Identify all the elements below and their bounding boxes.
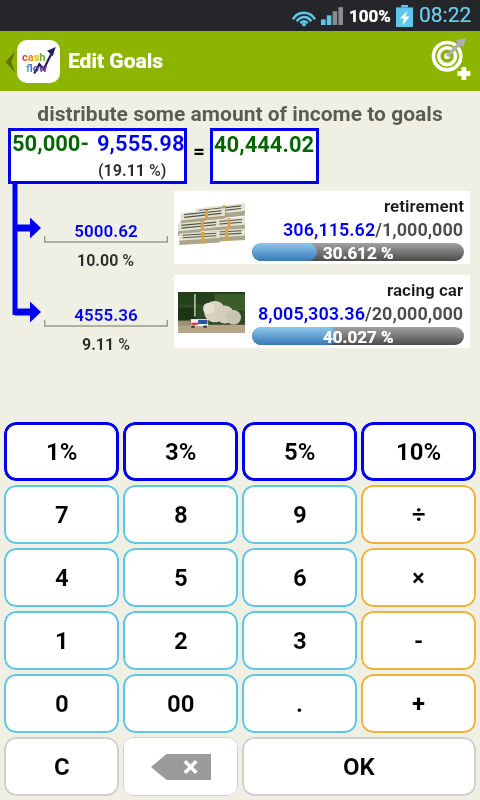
button[interactable]: 6 <box>242 548 357 607</box>
button[interactable]: 8 <box>123 485 238 544</box>
staticText: 30.612 % <box>323 243 394 261</box>
staticText: 8 <box>174 501 188 529</box>
button[interactable]: 5 <box>123 548 238 607</box>
staticText: 3 <box>293 627 307 655</box>
staticText: 40.027 % <box>323 327 394 345</box>
button[interactable]: racing car <box>174 275 470 348</box>
button[interactable]: 1% <box>4 422 119 481</box>
button[interactable]: Back <box>0 40 61 83</box>
staticText: OK <box>343 753 375 781</box>
staticText: 306,115.62/1,000,000 <box>283 219 464 240</box>
staticText: racing car <box>387 280 464 300</box>
staticText: 00 <box>167 690 195 718</box>
staticText: 100% <box>349 6 391 26</box>
button[interactable]: 0 <box>4 674 119 733</box>
staticText: 9.11 % <box>82 335 130 354</box>
staticText: = <box>193 139 206 164</box>
staticText: 1 <box>55 627 69 655</box>
button[interactable]: 4 <box>4 548 119 607</box>
staticText: 4 <box>55 564 69 592</box>
other: Back <box>5 51 15 73</box>
button[interactable]: 5000.62 <box>44 221 168 270</box>
button[interactable]: OK <box>242 737 476 796</box>
staticText: 40,444.02 <box>214 132 315 158</box>
button[interactable]: + <box>361 674 476 733</box>
button[interactable]: 7 <box>4 485 119 544</box>
button[interactable]: 1 <box>4 611 119 670</box>
staticText: + <box>412 690 426 718</box>
staticText: 10.00 % <box>77 251 135 270</box>
button[interactable]: 5% <box>242 422 357 481</box>
staticText: 2 <box>174 627 188 655</box>
staticText: 9,555.98 <box>97 131 185 157</box>
staticText: - <box>414 627 424 655</box>
button[interactable]: 10% <box>361 422 476 481</box>
staticText: 50,000- <box>12 131 90 157</box>
staticText: C <box>54 753 70 781</box>
staticText: 9 <box>293 501 307 529</box>
button[interactable]: 00 <box>123 674 238 733</box>
staticText: 3% <box>165 438 197 466</box>
button[interactable]: 3% <box>123 422 238 481</box>
staticText: 8,005,303.36/20,000,000 <box>258 303 464 324</box>
staticText: 0 <box>55 690 69 718</box>
staticText: ÷ <box>412 501 426 529</box>
button[interactable]: 2 <box>123 611 238 670</box>
staticText: cash <box>22 51 46 64</box>
staticText: Edit Goals <box>68 49 164 74</box>
button[interactable]: retirement <box>174 191 470 264</box>
button[interactable]: C <box>4 737 119 796</box>
button[interactable]: 40,444.02 <box>210 128 319 184</box>
staticText: 5 <box>174 564 188 592</box>
staticText: 6 <box>293 564 307 592</box>
button[interactable]: 3 <box>242 611 357 670</box>
staticText: retirement <box>384 196 464 216</box>
button[interactable]: 9 <box>242 485 357 544</box>
button[interactable]: ÷ <box>361 485 476 544</box>
button[interactable]: 50,000- <box>8 128 187 184</box>
staticText: 5% <box>284 438 316 466</box>
staticText: 1% <box>46 438 78 466</box>
staticText: 4555.36 <box>44 305 168 325</box>
button[interactable]: 4555.36 <box>44 305 168 354</box>
staticText: . <box>296 690 303 718</box>
staticText: flow <box>26 62 48 75</box>
staticText: 5000.62 <box>44 221 168 241</box>
staticText: 7 <box>55 501 69 529</box>
button[interactable]: × <box>361 548 476 607</box>
staticText: distribute some amount of income to goal… <box>0 102 480 127</box>
staticText: 10% <box>396 438 442 466</box>
button[interactable]: - <box>361 611 476 670</box>
button[interactable]: Add goal <box>420 31 480 91</box>
button[interactable]: Backspace <box>123 737 238 796</box>
staticText: (19.11 %) <box>98 161 167 180</box>
staticText: 08:22 <box>419 3 472 28</box>
staticText: × <box>412 564 425 592</box>
button[interactable]: . <box>242 674 357 733</box>
